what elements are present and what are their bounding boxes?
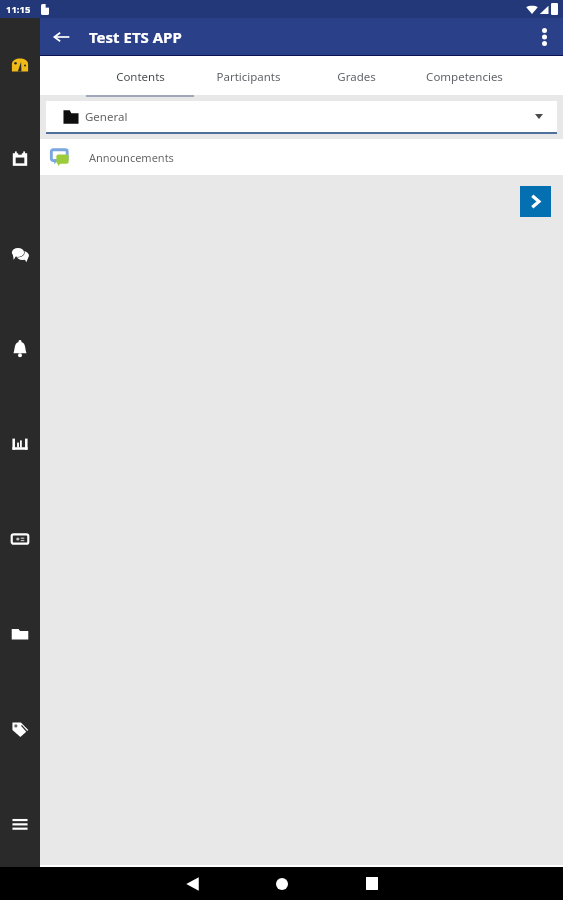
button[interactable]: Back [147, 867, 237, 900]
button[interactable]: Home [237, 867, 327, 900]
button[interactable]: Announcements [40, 139, 563, 175]
button[interactable]: Badges [9, 528, 31, 550]
button[interactable]: Messages [9, 243, 31, 265]
button[interactable]: Participants [194, 56, 302, 97]
staticText: 11:15 [6, 3, 31, 16]
staticText: General [85, 109, 128, 125]
staticText: Participants [216, 69, 281, 85]
button[interactable]: Recent apps [327, 867, 417, 900]
button[interactable]: Menu [9, 813, 31, 835]
staticText: Grades [337, 69, 376, 85]
button[interactable]: General [46, 101, 557, 132]
button[interactable]: Tags [9, 718, 31, 740]
button[interactable]: Notifications [9, 338, 31, 360]
staticText: Contents [116, 69, 165, 85]
button[interactable]: Calendar [9, 148, 31, 170]
button[interactable]: Grades [302, 56, 410, 97]
button[interactable]: Grades [9, 433, 31, 455]
staticText: Test ETS APP [89, 27, 182, 47]
staticText: Announcements [89, 150, 174, 165]
button[interactable]: Files [9, 623, 31, 645]
button[interactable]: Competencies [410, 56, 518, 97]
button[interactable]: Back [42, 18, 80, 56]
staticText: Competencies [426, 69, 503, 85]
button[interactable]: Next [520, 186, 551, 217]
button[interactable]: More options [525, 18, 563, 56]
button[interactable]: Dashboard [9, 53, 31, 75]
button[interactable]: Contents [86, 56, 194, 97]
